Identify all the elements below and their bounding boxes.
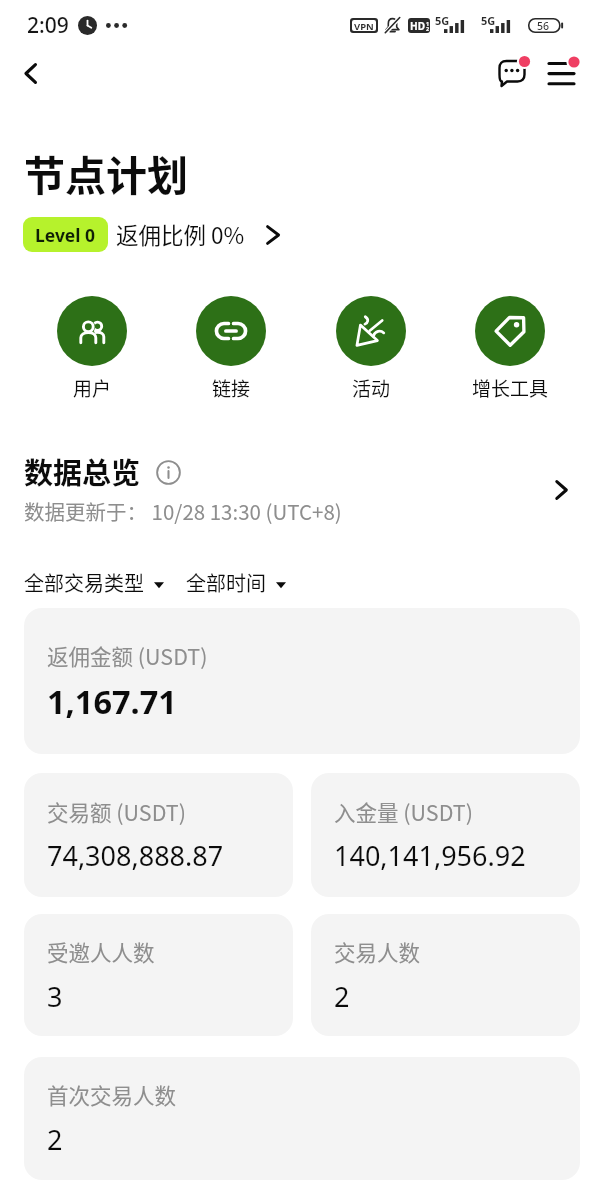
staticText: 用户 bbox=[73, 374, 112, 402]
staticText: 受邀人人数 bbox=[47, 936, 155, 967]
staticText: 3 bbox=[47, 978, 63, 1015]
staticText: 5G bbox=[435, 13, 450, 28]
button[interactable]: Back bbox=[6, 49, 54, 97]
staticText: 节点计划 bbox=[24, 143, 188, 202]
staticText: 交易额 (USDT) bbox=[47, 796, 187, 827]
staticText: 全部时间 bbox=[186, 568, 266, 597]
staticText: HD bbox=[410, 19, 425, 33]
staticText: 链接 bbox=[212, 374, 251, 402]
button[interactable]: 全部时间 bbox=[186, 568, 286, 597]
button[interactable]: 入金量 (USDT) bbox=[311, 773, 580, 897]
staticText: Level 0 bbox=[35, 223, 96, 247]
staticText: 数据总览 bbox=[24, 450, 141, 492]
staticText: 2 bbox=[426, 25, 430, 32]
staticText: 返佣比例 0% bbox=[116, 218, 245, 251]
staticText: 活动 bbox=[352, 374, 391, 402]
button[interactable]: Menu bbox=[540, 50, 586, 96]
button[interactable]: 交易额 (USDT) bbox=[24, 773, 293, 897]
staticText: 入金量 (USDT) bbox=[334, 796, 474, 827]
staticText: VPN bbox=[354, 20, 374, 31]
staticText: 5G bbox=[481, 13, 496, 28]
staticText: 56 bbox=[537, 19, 550, 33]
button[interactable]: 用户 bbox=[37, 296, 147, 402]
button[interactable]: 返佣金额 (USDT) bbox=[24, 608, 580, 754]
button[interactable]: 增长工具 bbox=[455, 296, 565, 402]
button[interactable]: 受邀人人数 bbox=[24, 914, 293, 1036]
staticText: 2 bbox=[334, 978, 350, 1015]
staticText: 2 bbox=[47, 1121, 63, 1158]
button[interactable]: Chat bbox=[491, 50, 537, 96]
staticText: 74,308,888.87 bbox=[47, 837, 224, 874]
button[interactable]: 全部交易类型 bbox=[24, 568, 164, 597]
staticText: 交易人数 bbox=[334, 936, 421, 967]
staticText: 全部交易类型 bbox=[24, 568, 144, 597]
button[interactable]: Open data overview bbox=[541, 470, 581, 510]
staticText: 1 bbox=[426, 20, 430, 27]
button[interactable]: 交易人数 bbox=[311, 914, 580, 1036]
button[interactable]: 首次交易人数 bbox=[24, 1057, 580, 1180]
staticText: 1,167.71 bbox=[47, 679, 177, 723]
staticText: 首次交易人数 bbox=[47, 1079, 177, 1110]
staticText: 增长工具 bbox=[472, 374, 549, 402]
button[interactable]: 活动 bbox=[316, 296, 426, 402]
button[interactable]: Level 0 bbox=[23, 217, 281, 252]
staticText: 140,141,956.92 bbox=[334, 837, 526, 874]
staticText: 返佣金额 (USDT) bbox=[47, 640, 208, 671]
button[interactable]: 链接 bbox=[176, 296, 286, 402]
staticText: 2:09 bbox=[27, 11, 69, 40]
staticText: 数据更新于： 10/28 13:30 (UTC+8) bbox=[24, 496, 342, 526]
